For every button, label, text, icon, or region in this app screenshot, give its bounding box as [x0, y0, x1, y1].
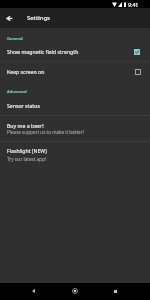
button[interactable] — [0, 142, 150, 167]
staticText: Advanced — [7, 89, 27, 95]
staticText: Keep screen on — [7, 68, 45, 75]
staticText: Buy me a beer! — [7, 122, 44, 129]
button[interactable] — [0, 43, 150, 61]
button[interactable]: Home — [67, 283, 83, 299]
staticText: Sensor status — [7, 102, 40, 109]
button[interactable] — [0, 99, 150, 115]
button[interactable]: Checked — [129, 44, 145, 60]
staticText: 9:41 — [128, 1, 139, 8]
button[interactable]: Unchecked — [130, 64, 146, 80]
staticText: Try our latest app! — [7, 156, 46, 162]
button[interactable] — [0, 116, 150, 141]
button[interactable] — [0, 62, 150, 83]
staticText: Settings — [27, 14, 50, 22]
staticText: General — [7, 36, 23, 42]
staticText: Please support us to make it better! — [7, 129, 84, 135]
button[interactable]: Recents — [107, 283, 123, 299]
button[interactable]: Back — [25, 283, 41, 299]
staticText: Show magnetic field strength — [7, 48, 79, 55]
button[interactable]: Back — [0, 8, 19, 28]
staticText: Flashlight (NEW) — [7, 147, 47, 154]
